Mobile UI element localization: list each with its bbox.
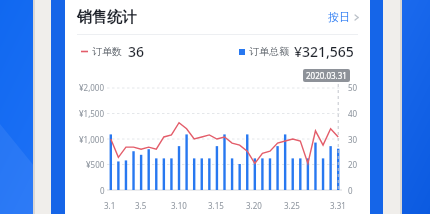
staticText: 3.31 xyxy=(330,200,346,211)
staticText: 销售统计 xyxy=(77,8,137,27)
staticText: ¥1,000 xyxy=(79,134,105,145)
button[interactable]: 按日 xyxy=(324,6,365,28)
staticText: 30 xyxy=(348,134,358,145)
staticText: 订单总额 xyxy=(249,45,289,58)
staticText: ¥321,565 xyxy=(294,42,354,61)
staticText: 2020.03.31 xyxy=(306,70,347,81)
staticText: 3.20 xyxy=(246,200,262,211)
staticText: 40 xyxy=(348,108,358,119)
staticText: 3.1 xyxy=(104,200,116,211)
staticText: 50 xyxy=(348,82,358,93)
staticText: ¥1,500 xyxy=(79,108,105,119)
staticText: 20 xyxy=(348,159,358,170)
staticText: 0 xyxy=(100,185,105,196)
other: Change period xyxy=(352,13,361,22)
staticText: 0 xyxy=(348,185,353,196)
staticText: 按日 xyxy=(328,10,350,24)
staticText: 订单数 xyxy=(92,45,122,58)
staticText: ¥2,000 xyxy=(79,82,105,93)
staticText: 3.10 xyxy=(171,200,187,211)
staticText: 3.5 xyxy=(135,200,147,211)
staticText: 3.15 xyxy=(208,200,224,211)
staticText: 3.25 xyxy=(284,200,300,211)
staticText: 36 xyxy=(128,42,145,61)
staticText: ¥500 xyxy=(86,159,105,170)
